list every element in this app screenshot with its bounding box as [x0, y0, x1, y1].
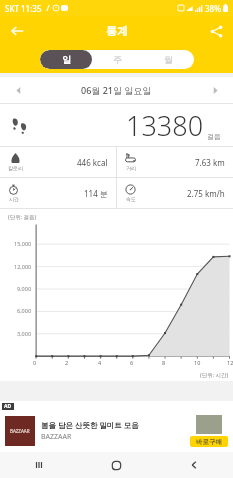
staticText: 446 kcal	[77, 157, 108, 168]
staticText: 4	[98, 359, 102, 366]
staticText: 2	[65, 359, 69, 366]
staticText: 12	[227, 359, 233, 366]
button[interactable]: Home	[77, 452, 155, 478]
staticText: 6,000	[17, 307, 32, 314]
staticText: 거리	[126, 165, 136, 171]
button[interactable]: 일	[40, 50, 92, 69]
button[interactable]: 속도	[117, 178, 233, 208]
staticText: 속도	[126, 196, 136, 202]
staticText: BAZZAAR	[10, 428, 30, 434]
staticText: 주	[113, 54, 122, 65]
staticText: 월	[164, 54, 173, 65]
staticText: (단위: 걸음)	[8, 213, 37, 221]
button[interactable]: 월	[143, 50, 194, 69]
button[interactable]: 시간	[0, 178, 116, 208]
button[interactable]: Back	[4, 18, 30, 44]
staticText: 7.63 km	[195, 157, 225, 168]
staticText: (단위: 시간)	[200, 371, 229, 379]
staticText: 114 분	[84, 188, 108, 199]
button[interactable]: BAZZAAR	[0, 410, 233, 452]
staticText: 38%	[205, 3, 221, 14]
button[interactable]: 칼로리	[0, 147, 116, 177]
staticText: 10	[194, 359, 201, 366]
staticText: 8	[162, 359, 166, 366]
staticText: 3,000	[17, 330, 32, 337]
staticText: 0	[33, 359, 37, 366]
staticText: 6	[130, 359, 134, 366]
button[interactable]: 주	[92, 50, 143, 69]
button[interactable]: Previous day	[10, 82, 26, 98]
button[interactable]: Share	[203, 18, 229, 44]
staticText: BAZZAAR	[41, 432, 72, 442]
staticText: SKT 11:35	[5, 3, 42, 14]
staticText: 15,000	[14, 240, 32, 247]
staticText: 06월 21일 일요일	[81, 84, 152, 96]
button[interactable]: Back	[155, 452, 233, 478]
staticText: AD	[4, 403, 12, 410]
staticText: 봄을 담은 산뜻한 밀미트 모음	[41, 420, 139, 430]
staticText: 시간	[9, 196, 19, 202]
button[interactable]: 거리	[117, 147, 233, 177]
staticText: 통계	[106, 24, 128, 38]
button[interactable]: Next day	[207, 82, 223, 98]
staticText: 12,000	[14, 263, 32, 270]
staticText: 13380	[126, 107, 204, 144]
staticText: 일	[62, 54, 71, 65]
staticText: 2.75 km/h	[187, 188, 225, 199]
staticText: 바로구매	[196, 438, 222, 446]
staticText: 칼로리	[8, 165, 23, 171]
button[interactable]: Recents	[0, 452, 77, 478]
staticText: 걸음	[207, 132, 221, 141]
staticText: 9,000	[17, 285, 32, 292]
button[interactable]: 바로구매	[190, 436, 228, 447]
